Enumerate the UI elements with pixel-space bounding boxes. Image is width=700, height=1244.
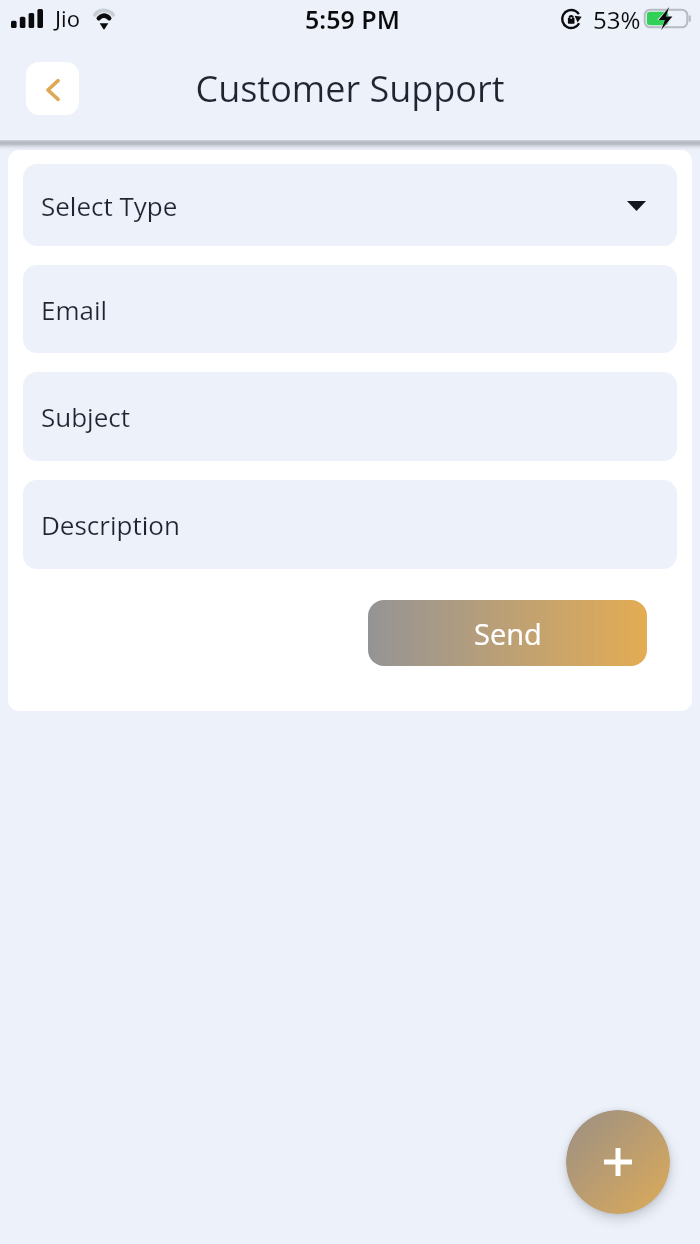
- button[interactable]: Email: [23, 265, 677, 353]
- staticText: 5:59 PM: [305, 2, 400, 36]
- staticText: Select Type: [41, 188, 178, 223]
- staticText: Description: [41, 507, 180, 542]
- button[interactable]: Subject: [23, 372, 677, 461]
- button[interactable]: Add: [566, 1110, 670, 1214]
- button[interactable]: Back: [26, 62, 79, 115]
- button[interactable]: Send: [368, 600, 647, 666]
- staticText: Email: [41, 292, 108, 327]
- staticText: Send: [474, 614, 542, 653]
- staticText: Subject: [41, 399, 130, 434]
- button[interactable]: Select Type: [23, 164, 677, 246]
- button[interactable]: Description: [23, 480, 677, 569]
- staticText: Jio: [55, 3, 80, 33]
- staticText: Customer Support: [195, 64, 505, 113]
- staticText: 53%: [593, 3, 641, 36]
